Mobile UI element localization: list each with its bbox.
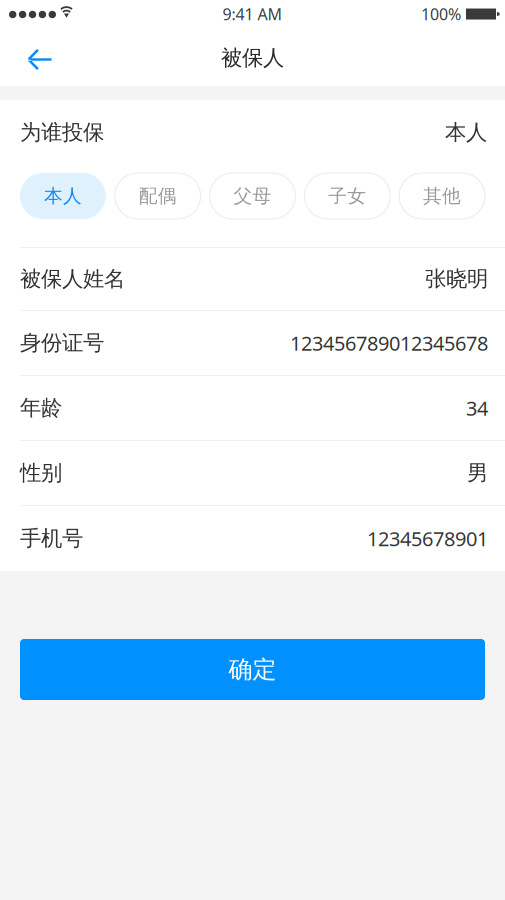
staticText: 子女	[328, 184, 366, 208]
staticText: 本人	[445, 119, 487, 146]
staticText: 34	[466, 394, 488, 422]
staticText: 男	[467, 460, 488, 486]
staticText: 为谁投保	[20, 119, 104, 146]
staticText: 被保人姓名	[20, 266, 125, 292]
staticText: 手机号	[20, 525, 83, 552]
staticText: 123456789012345678	[290, 329, 488, 357]
staticText: 年龄	[20, 395, 62, 421]
button[interactable]: 配偶	[115, 173, 201, 219]
staticText: 身份证号	[20, 330, 104, 356]
staticText: 确定	[228, 654, 276, 685]
staticText: 本人	[44, 184, 82, 208]
staticText: 配偶	[139, 184, 177, 208]
button[interactable]: 其他	[399, 173, 485, 219]
button[interactable]: 确定	[20, 639, 485, 700]
button[interactable]: 父母	[210, 173, 295, 219]
button[interactable]: 本人	[20, 173, 106, 219]
staticText: 其他	[423, 184, 461, 208]
staticText: 被保人	[221, 45, 284, 71]
staticText: 性别	[20, 460, 62, 486]
button[interactable]: Back	[0, 30, 70, 86]
button[interactable]: 子女	[304, 173, 390, 219]
staticText: 12345678901	[367, 525, 488, 552]
staticText: 父母	[233, 184, 271, 208]
staticText: 张晓明	[425, 266, 488, 292]
staticText: 100%	[421, 3, 461, 25]
staticText: 9:41 AM	[222, 3, 282, 25]
